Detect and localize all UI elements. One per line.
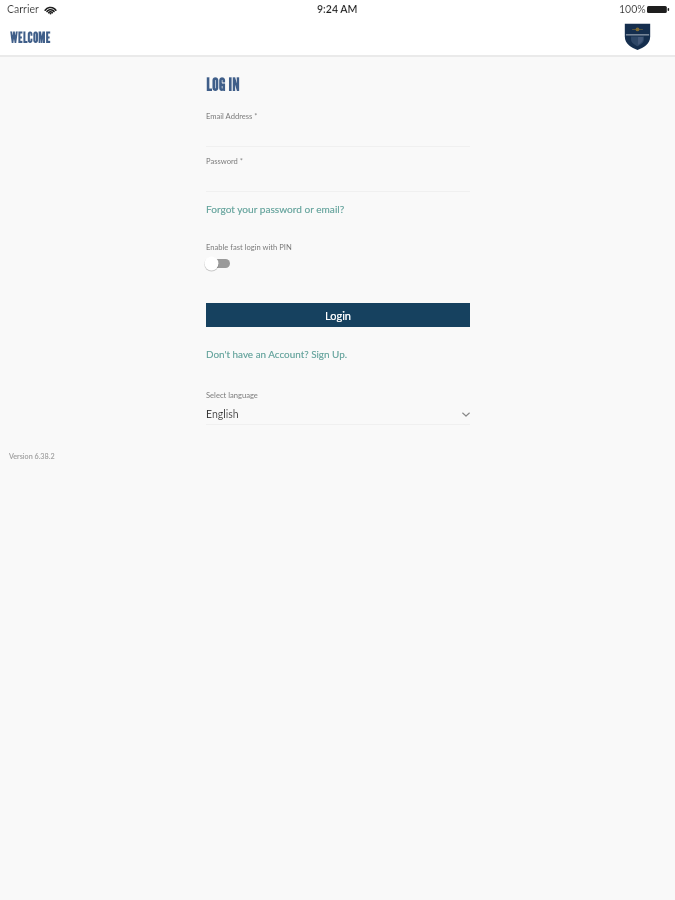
staticText: Forgot your password or email? [206,203,345,215]
staticText: Version 6.38.2 [9,452,55,461]
button[interactable]: Login [206,303,470,327]
button[interactable]: Enable fast login with PIN [204,256,231,271]
staticText: LOG IN [206,73,240,95]
button[interactable]: Don't have an Account? Sign Up. [206,348,348,360]
button[interactable]: English [206,406,470,422]
staticText: Login [325,309,351,322]
button[interactable]: Email Address * [206,110,470,147]
staticText: Carrier [7,3,39,16]
staticText: Email Address * [206,111,258,120]
button[interactable]: Logo [624,23,651,50]
button[interactable]: Password * [206,155,470,192]
button[interactable]: Forgot your password or email? [206,203,345,215]
staticText: 9:24 AM [317,3,358,16]
staticText: English [206,408,239,421]
staticText: Enable fast login with PIN [206,242,292,251]
staticText: 100% [619,3,646,16]
staticText: Password * [206,156,244,165]
staticText: Don't have an Account? Sign Up. [206,348,348,360]
staticText: Select language [206,390,258,399]
button[interactable]: WELCOME [10,29,51,46]
